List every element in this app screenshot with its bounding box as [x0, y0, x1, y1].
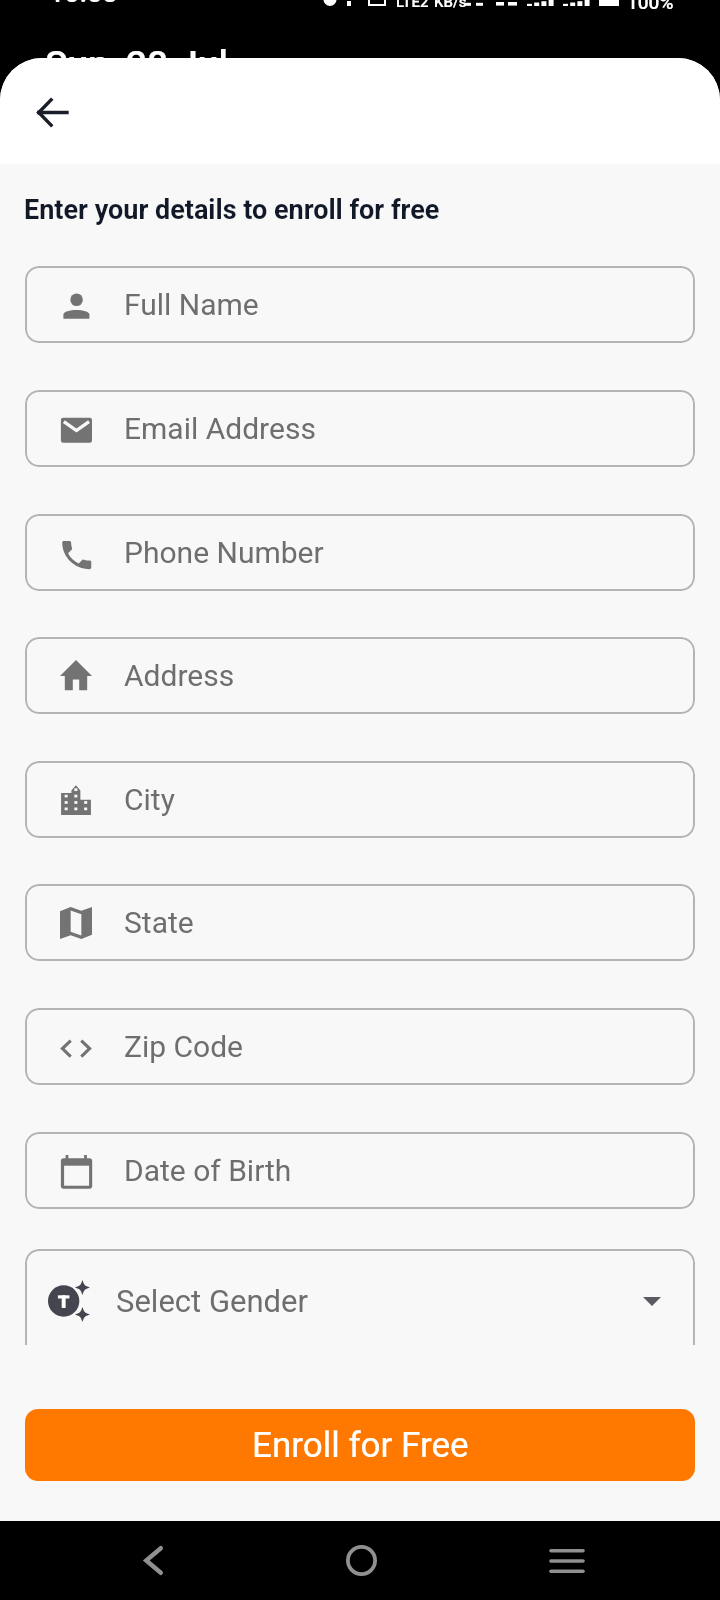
button[interactable]: Back	[93, 1521, 213, 1600]
staticText: Enroll for Free	[252, 1425, 469, 1466]
button[interactable]: Phone Number	[25, 514, 695, 591]
button[interactable]: Select Gender	[25, 1249, 695, 1345]
staticText: Email Address	[124, 411, 316, 446]
staticText: 100%	[627, 0, 674, 13]
staticText: Sun, 28 Jul	[45, 43, 228, 64]
staticText: KB/s	[434, 0, 467, 11]
button[interactable]: Email Address	[25, 390, 695, 467]
staticText: State	[124, 905, 194, 940]
button[interactable]: Home	[301, 1521, 421, 1600]
button[interactable]: City	[25, 761, 695, 838]
button[interactable]: Enroll for Free	[25, 1409, 695, 1481]
button[interactable]: Full Name	[25, 266, 695, 343]
staticText: Enter your details to enroll for free	[24, 194, 440, 226]
button[interactable]: Date of Birth	[25, 1132, 695, 1209]
staticText: LTE2	[396, 0, 429, 11]
staticText: Full Name	[124, 287, 259, 322]
button[interactable]: Zip Code	[25, 1008, 695, 1085]
button[interactable]: Back	[24, 84, 80, 140]
staticText: Date of Birth	[124, 1153, 292, 1188]
staticText: Address	[124, 658, 235, 693]
staticText: Select Gender	[116, 1283, 308, 1319]
staticText: City	[124, 782, 175, 817]
staticText: Zip Code	[124, 1029, 244, 1064]
button[interactable]: Address	[25, 637, 695, 714]
button[interactable]: Recent apps	[507, 1521, 627, 1600]
staticText: 10:58	[49, 0, 118, 9]
button[interactable]: State	[25, 884, 695, 961]
staticText: Phone Number	[124, 535, 324, 570]
